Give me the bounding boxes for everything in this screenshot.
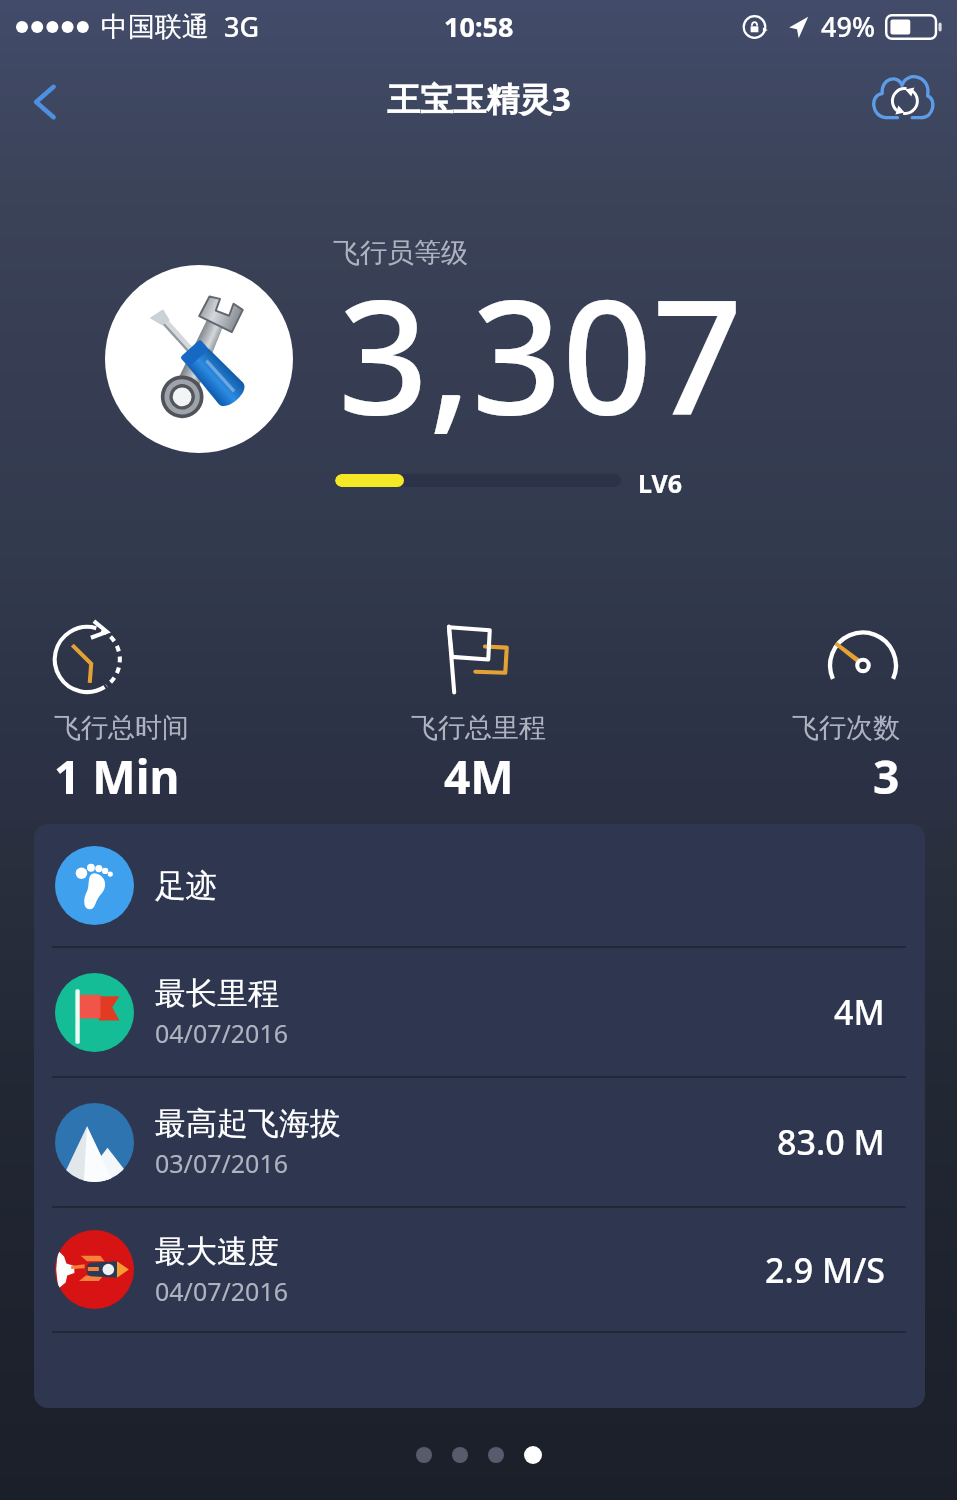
staticText: 03/07/2016 — [155, 1146, 289, 1180]
button[interactable]: 飞行总里程 — [319, 612, 638, 812]
button[interactable]: Page 1 — [416, 1447, 432, 1463]
button[interactable]: 飞行次数 — [638, 612, 957, 812]
staticText: 飞行员等级 — [333, 236, 468, 270]
staticText: 4M — [444, 745, 514, 808]
staticText: 飞行总时间 — [54, 711, 189, 745]
staticText: 3 — [873, 745, 900, 808]
staticText: 83.0 M — [777, 1119, 885, 1165]
staticText: 4M — [834, 989, 885, 1035]
staticText: 飞行总里程 — [411, 711, 546, 745]
button[interactable]: 最长里程 — [34, 948, 925, 1076]
staticText: LV6 — [638, 466, 683, 494]
button[interactable]: Back — [10, 66, 82, 138]
staticText: 2.9 M/S — [765, 1247, 885, 1293]
staticText: 最大速度 — [155, 1232, 279, 1271]
staticText: 04/07/2016 — [155, 1016, 289, 1050]
button[interactable]: 最大速度 — [34, 1208, 925, 1331]
staticText: 最高起飞海拔 — [155, 1104, 341, 1143]
staticText: 1 Min — [54, 745, 180, 808]
staticText: 3,307 — [338, 245, 743, 460]
staticText: 最长里程 — [155, 974, 279, 1013]
staticText: 中国联通 — [101, 10, 209, 44]
button[interactable]: 足迹 — [34, 824, 925, 946]
button[interactable]: Sync to cloud — [863, 62, 941, 140]
staticText: 04/07/2016 — [155, 1274, 289, 1308]
button[interactable]: Page 4 — [524, 1446, 542, 1464]
button[interactable]: 飞行总时间 — [0, 612, 319, 812]
staticText: 足迹 — [155, 866, 217, 905]
staticText: 飞行次数 — [792, 711, 900, 745]
staticText: 49% — [821, 8, 875, 45]
button[interactable]: Profile avatar — [105, 265, 293, 453]
staticText: 王宝玉精灵3 — [387, 76, 571, 121]
button[interactable]: 最高起飞海拔 — [34, 1078, 925, 1206]
button[interactable]: Page 2 — [452, 1447, 468, 1463]
button[interactable]: Page 3 — [488, 1447, 504, 1463]
staticText: 10:58 — [444, 8, 514, 45]
staticText: 3G — [224, 8, 260, 45]
